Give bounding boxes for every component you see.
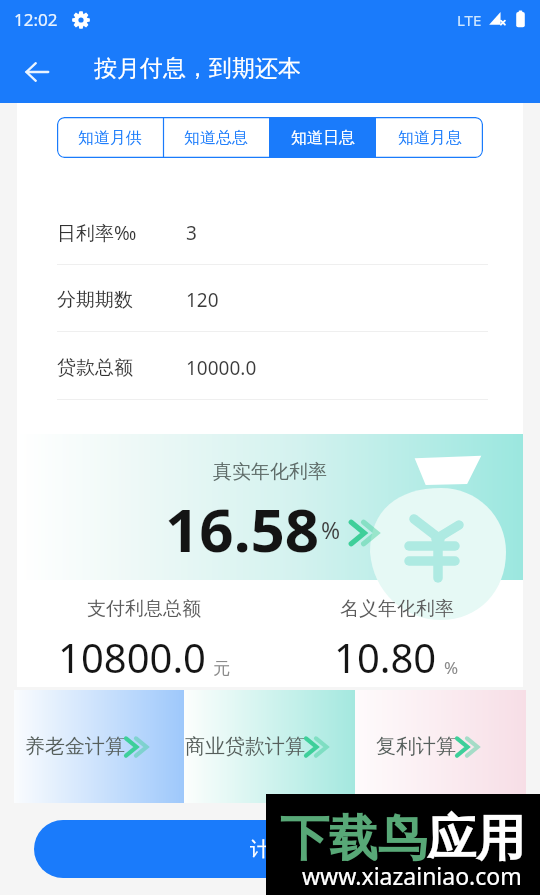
staticText: 计算	[250, 837, 290, 862]
staticText: 元	[213, 658, 230, 679]
staticText: %	[444, 656, 459, 679]
staticText: 真实年化利率	[213, 460, 327, 484]
button[interactable]: 知道月息	[376, 117, 483, 158]
staticText: 商业贷款计算	[185, 734, 305, 759]
staticText: 知道月供	[78, 128, 142, 148]
staticText: 复利计算	[376, 734, 456, 759]
staticText: 支付利息总额	[87, 597, 201, 621]
staticText: 名义年化利率	[340, 597, 454, 621]
button[interactable]: 复利计算	[355, 690, 526, 803]
button[interactable]: 商业贷款计算	[184, 690, 355, 803]
staticText: 按月付息，到期还本	[94, 54, 301, 83]
staticText: LTE	[457, 10, 482, 30]
staticText: 12:02	[14, 8, 58, 31]
staticText: 下载鸟	[280, 808, 427, 870]
staticText: 贷款总额	[57, 356, 133, 380]
button[interactable]: Back	[11, 46, 63, 98]
staticText: www.xiazainiao.com	[302, 860, 522, 891]
staticText: 日利率‰	[57, 220, 137, 246]
staticText: 16.58	[165, 488, 320, 570]
staticText: 10000.0	[186, 355, 257, 381]
button[interactable]: 知道总息	[163, 117, 269, 158]
staticText: 10.80	[334, 630, 437, 684]
staticText: 10800.0	[58, 630, 206, 684]
button[interactable]: 知道日息	[269, 117, 376, 158]
staticText: %	[321, 514, 341, 545]
button[interactable]: 知道月供	[57, 117, 163, 158]
staticText: 养老金计算	[25, 734, 125, 759]
button[interactable]: 养老金计算	[14, 690, 184, 803]
staticText: 120	[186, 287, 219, 313]
staticText: 知道月息	[398, 128, 462, 148]
button[interactable]: 计算	[34, 820, 506, 878]
staticText: 知道日息	[291, 128, 355, 148]
staticText: 3	[186, 220, 197, 246]
staticText: 应用	[427, 808, 525, 870]
staticText: 知道总息	[184, 128, 248, 148]
staticText: 分期期数	[57, 288, 133, 312]
